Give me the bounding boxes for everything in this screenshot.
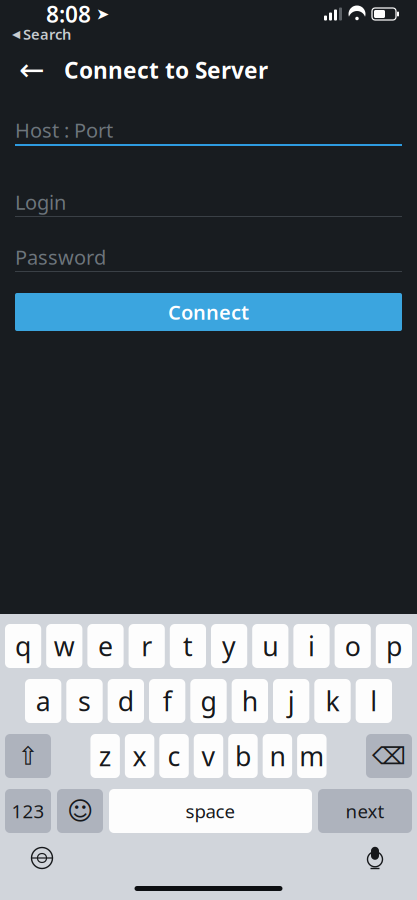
button[interactable]: y: [211, 624, 247, 668]
button[interactable]: Connect: [15, 293, 402, 331]
button[interactable]: g: [190, 679, 227, 723]
button[interactable]: h: [232, 679, 268, 723]
button[interactable]: c: [159, 734, 189, 778]
staticText: Password: [15, 244, 106, 270]
button[interactable]: 123: [5, 789, 51, 833]
staticText: j: [288, 683, 295, 719]
staticText: g: [200, 683, 216, 719]
button[interactable]: k: [314, 679, 351, 723]
staticText: Connect: [168, 299, 249, 325]
button[interactable]: o: [335, 624, 371, 668]
staticText: i: [308, 628, 315, 664]
button[interactable]: next: [318, 789, 412, 833]
staticText: s: [78, 683, 91, 719]
button[interactable]: n: [263, 734, 292, 778]
staticText: q: [15, 628, 31, 664]
staticText: f: [163, 683, 172, 719]
button[interactable]: Host : Port: [15, 116, 402, 146]
button[interactable]: Delete: [366, 734, 412, 778]
button[interactable]: z: [90, 734, 120, 778]
staticText: 123: [11, 799, 44, 823]
button[interactable]: Switch keyboard: [20, 839, 64, 877]
staticText: n: [269, 738, 285, 774]
button[interactable]: x: [125, 734, 154, 778]
staticText: Connect to Server: [64, 55, 268, 85]
button[interactable]: a: [25, 679, 61, 723]
button[interactable]: i: [293, 624, 330, 668]
staticText: u: [262, 628, 278, 664]
staticText: v: [201, 738, 215, 774]
button[interactable]: e: [87, 624, 124, 668]
button[interactable]: space: [109, 789, 312, 833]
staticText: z: [99, 738, 112, 774]
staticText: r: [141, 628, 152, 664]
button[interactable]: Dictation: [353, 839, 397, 877]
staticText: m: [299, 738, 324, 774]
staticText: ➤: [96, 5, 109, 23]
button[interactable]: r: [129, 624, 165, 668]
staticText: e: [98, 628, 113, 664]
button[interactable]: Shift: [5, 734, 51, 778]
staticText: ◀: [12, 28, 20, 40]
button[interactable]: t: [170, 624, 206, 668]
button[interactable]: l: [356, 679, 392, 723]
staticText: ⇧: [17, 742, 38, 770]
button[interactable]: v: [194, 734, 223, 778]
staticText: t: [183, 628, 193, 664]
button[interactable]: w: [46, 624, 82, 668]
button[interactable]: s: [66, 679, 103, 723]
staticText: 8:08: [46, 0, 91, 29]
staticText: h: [242, 683, 258, 719]
staticText: x: [133, 738, 147, 774]
staticText: Host : Port: [15, 117, 113, 143]
staticText: p: [386, 628, 402, 664]
button[interactable]: Login: [15, 188, 402, 217]
button[interactable]: f: [149, 679, 185, 723]
staticText: space: [185, 799, 235, 823]
button[interactable]: b: [228, 734, 258, 778]
button[interactable]: p: [376, 624, 412, 668]
staticText: c: [168, 738, 181, 774]
staticText: y: [222, 628, 236, 664]
button[interactable]: u: [252, 624, 288, 668]
staticText: ←: [19, 53, 45, 87]
staticText: d: [118, 683, 134, 719]
staticText: next: [345, 799, 384, 823]
button[interactable]: q: [5, 624, 41, 668]
button[interactable]: j: [273, 679, 309, 723]
staticText: Search: [23, 24, 71, 44]
button[interactable]: Back: [10, 48, 54, 92]
button[interactable]: d: [108, 679, 144, 723]
staticText: k: [325, 683, 339, 719]
button[interactable]: Password: [15, 243, 402, 272]
staticText: ⌫: [372, 742, 406, 770]
staticText: w: [54, 628, 75, 664]
staticText: l: [370, 683, 377, 719]
button[interactable]: Emoji: [57, 789, 103, 833]
staticText: a: [36, 683, 51, 719]
staticText: Login: [15, 189, 66, 215]
staticText: b: [235, 738, 251, 774]
staticText: ☺: [67, 797, 93, 825]
staticText: o: [345, 628, 361, 664]
button[interactable]: m: [297, 734, 326, 778]
